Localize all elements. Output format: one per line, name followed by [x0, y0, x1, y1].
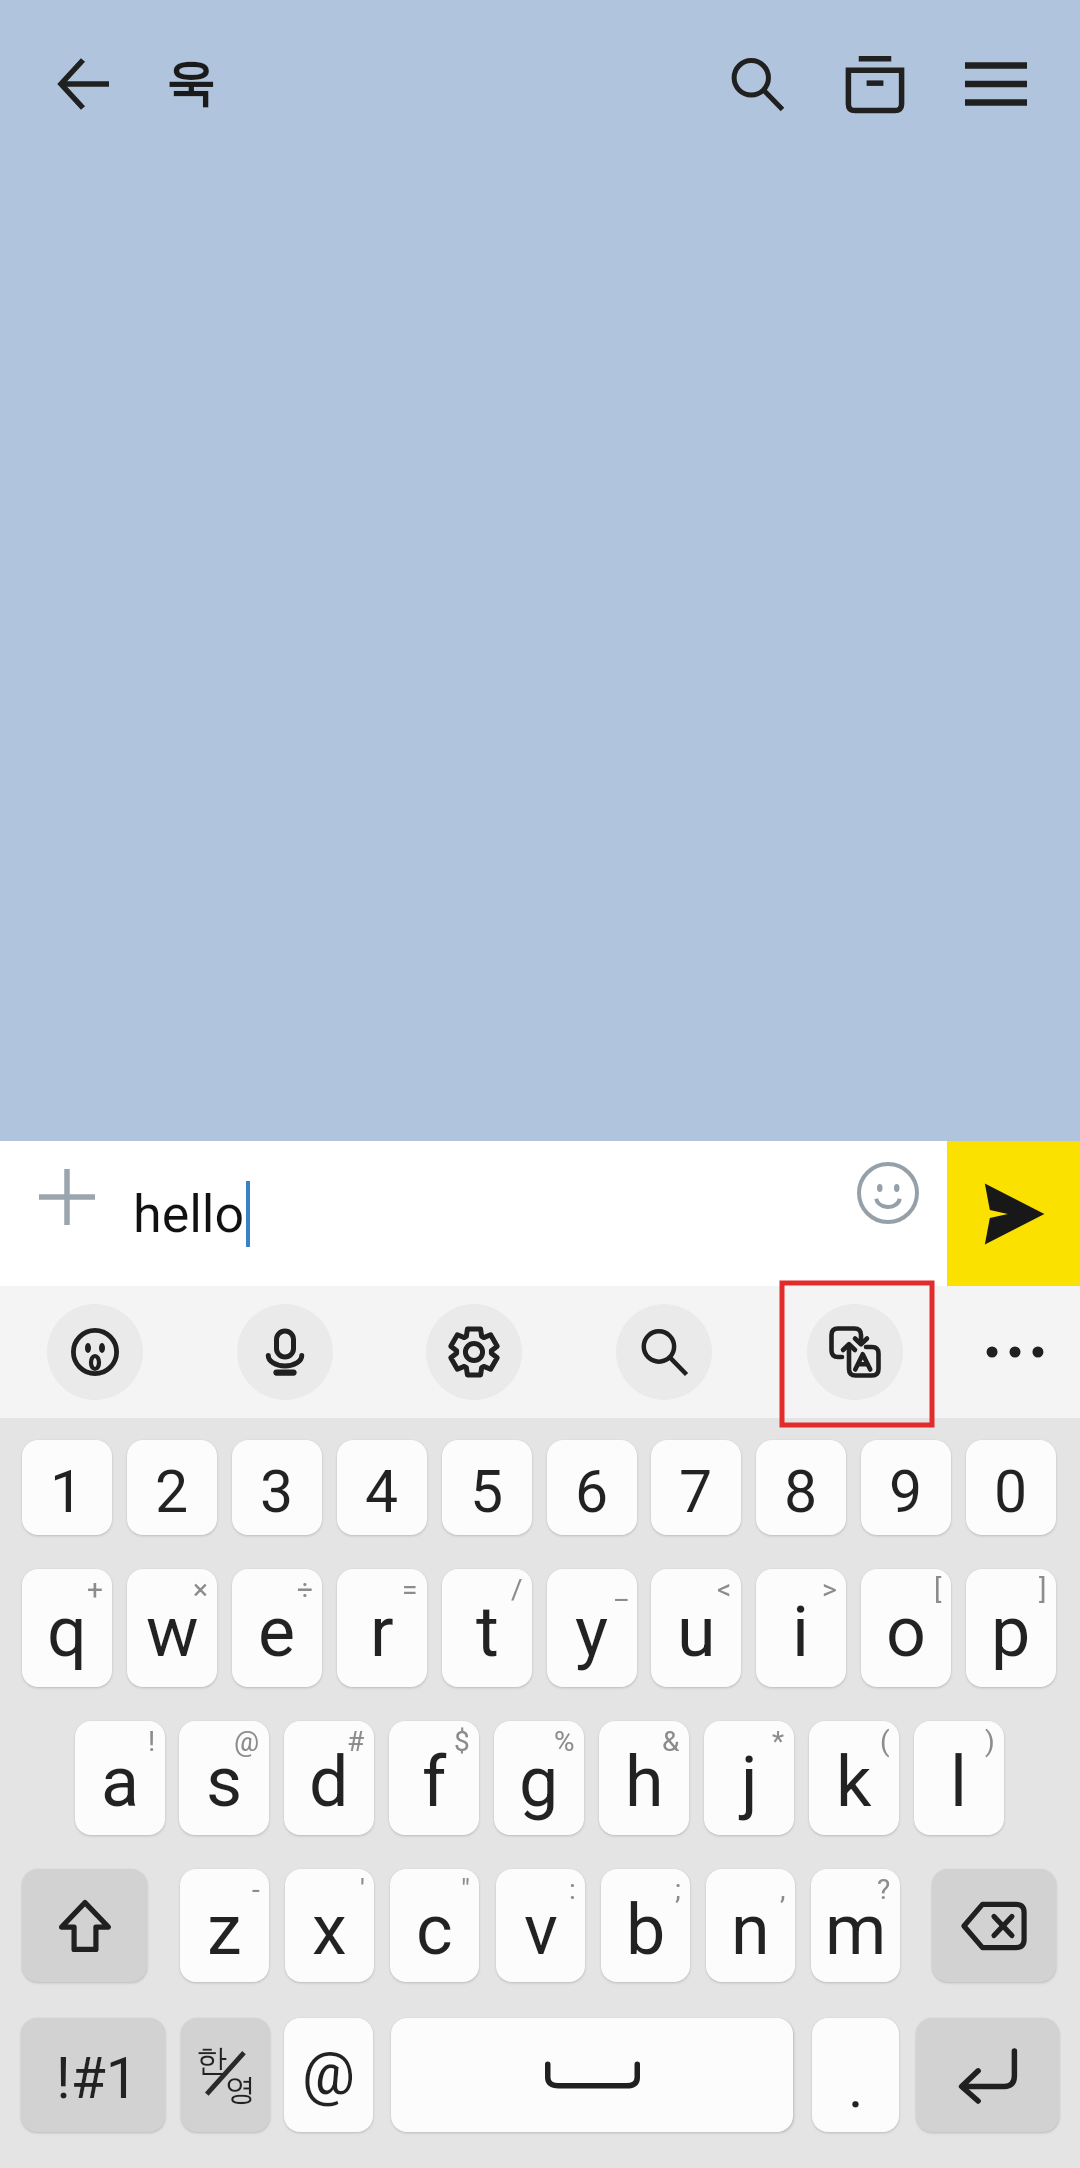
button[interactable]: Backspace	[932, 1869, 1056, 1982]
staticText: $	[454, 1725, 470, 1758]
staticText: h	[625, 1741, 664, 1823]
button[interactable]: -	[180, 1869, 269, 1982]
button[interactable]: _	[547, 1569, 637, 1687]
staticText: :	[569, 1873, 576, 1906]
staticText: 3	[260, 1457, 294, 1526]
button[interactable]: 4	[337, 1440, 427, 1535]
staticText: @	[302, 2039, 355, 2108]
button[interactable]: '	[285, 1869, 374, 1982]
staticText: ,	[780, 1873, 786, 1906]
button[interactable]: Keyboard settings	[426, 1304, 522, 1400]
button[interactable]: )	[914, 1721, 1004, 1835]
staticText: s	[206, 1741, 243, 1823]
button[interactable]: 3	[232, 1440, 322, 1535]
staticText: @	[234, 1725, 260, 1758]
staticText: <	[717, 1573, 732, 1606]
button[interactable]: *	[704, 1721, 794, 1835]
staticText: 2	[155, 1457, 189, 1526]
staticText: =	[402, 1573, 418, 1606]
staticText: ÷	[297, 1573, 313, 1606]
staticText: 8	[784, 1457, 818, 1526]
staticText: .	[848, 2052, 864, 2121]
button[interactable]: Search	[711, 38, 803, 130]
button[interactable]: "	[390, 1869, 479, 1982]
button[interactable]: Translate	[807, 1304, 903, 1400]
staticText: p	[991, 1591, 1031, 1673]
staticText: /	[511, 1573, 523, 1606]
button[interactable]: Archive	[829, 38, 921, 130]
staticText: +	[87, 1573, 103, 1606]
button[interactable]: 6	[547, 1440, 637, 1535]
staticText: 0	[994, 1457, 1028, 1526]
button[interactable]: @	[179, 1721, 269, 1835]
button[interactable]: 0	[966, 1440, 1056, 1535]
button[interactable]: 5	[442, 1440, 532, 1535]
staticText: z	[207, 1889, 242, 1971]
button[interactable]: Emoticon	[47, 1304, 143, 1400]
button[interactable]: 1	[22, 1440, 112, 1535]
staticText: j	[741, 1741, 758, 1823]
button[interactable]: %	[494, 1721, 584, 1835]
button[interactable]: !	[75, 1721, 165, 1835]
button[interactable]: ;	[601, 1869, 690, 1982]
button[interactable]: =	[337, 1569, 427, 1687]
staticText: !#1	[56, 2045, 138, 2112]
staticText: e	[258, 1591, 296, 1673]
button[interactable]: ×	[127, 1569, 217, 1687]
button[interactable]: Enter	[916, 2018, 1059, 2132]
staticText: (	[880, 1725, 890, 1758]
button[interactable]: +	[22, 1569, 112, 1687]
staticText: 1	[50, 1457, 84, 1526]
button[interactable]: Space	[391, 2018, 793, 2132]
button[interactable]: ?	[811, 1869, 900, 1982]
staticText: >	[822, 1573, 837, 1606]
button[interactable]: &	[599, 1721, 689, 1835]
staticText: *	[772, 1725, 785, 1758]
staticText: y	[575, 1591, 609, 1673]
button[interactable]: #	[284, 1721, 374, 1835]
button[interactable]: <	[651, 1569, 741, 1687]
button[interactable]: 2	[127, 1440, 217, 1535]
staticText: n	[731, 1889, 770, 1971]
staticText: k	[836, 1741, 872, 1823]
button[interactable]: Shift	[22, 1869, 147, 1982]
button[interactable]: Symbols	[21, 2018, 165, 2132]
button[interactable]: /	[442, 1569, 532, 1687]
staticText: q	[47, 1591, 87, 1673]
button[interactable]: [	[861, 1569, 951, 1687]
button[interactable]: Search	[616, 1304, 712, 1400]
button[interactable]: $	[389, 1721, 479, 1835]
button[interactable]: Send	[947, 1141, 1080, 1286]
button[interactable]: Back	[38, 38, 130, 130]
button[interactable]: :	[496, 1869, 585, 1982]
button[interactable]: Emoji	[848, 1153, 928, 1233]
button[interactable]: ÷	[232, 1569, 322, 1687]
button[interactable]: Voice input	[237, 1304, 333, 1400]
staticText: i	[792, 1591, 810, 1673]
button[interactable]: (	[809, 1721, 899, 1835]
staticText: _	[615, 1573, 628, 1606]
staticText: '	[360, 1873, 365, 1906]
staticText: c	[416, 1889, 453, 1971]
button[interactable]: 7	[651, 1440, 741, 1535]
button[interactable]: 욱	[144, 38, 236, 130]
staticText: 6	[575, 1457, 609, 1526]
button[interactable]: Menu	[950, 38, 1042, 130]
staticText: ;	[675, 1873, 681, 1906]
button[interactable]: 8	[756, 1440, 846, 1535]
button[interactable]: 9	[861, 1440, 951, 1535]
staticText: 4	[365, 1457, 399, 1526]
staticText: hello	[133, 1184, 245, 1245]
staticText: b	[626, 1889, 666, 1971]
button[interactable]: Attach	[27, 1157, 107, 1237]
button[interactable]: ,	[706, 1869, 795, 1982]
button[interactable]: More options	[967, 1304, 1063, 1400]
button[interactable]: ]	[966, 1569, 1056, 1687]
button[interactable]: @	[284, 2018, 373, 2132]
button[interactable]: Korean English toggle	[181, 2018, 270, 2132]
staticText: "	[461, 1873, 470, 1906]
button[interactable]: >	[756, 1569, 846, 1687]
staticText: o	[886, 1591, 926, 1673]
button[interactable]: hello	[133, 1141, 833, 1286]
button[interactable]: .	[812, 2018, 899, 2132]
